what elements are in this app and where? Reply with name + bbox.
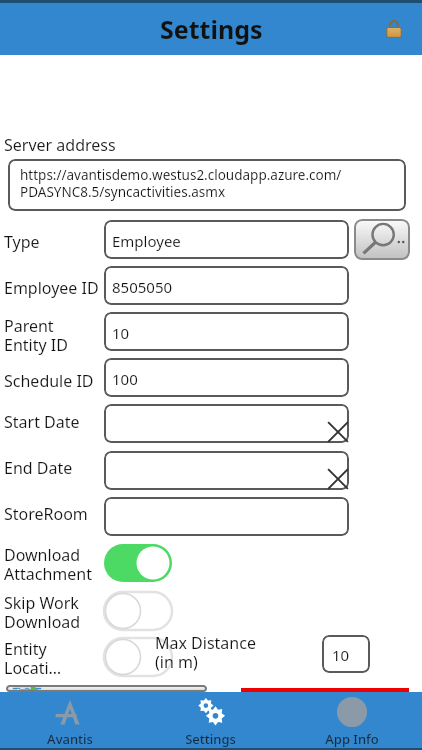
staticText: Employee xyxy=(112,231,181,251)
staticText: App Info xyxy=(325,730,379,748)
button[interactable] xyxy=(104,451,349,490)
staticText: Max Distance (in m) xyxy=(155,632,256,673)
staticText: Parent Entity ID xyxy=(4,315,68,356)
button[interactable]: Settings xyxy=(140,692,281,750)
staticText: Save and Download xyxy=(50,685,199,692)
button[interactable]: App Info xyxy=(281,692,422,750)
staticText: Type xyxy=(4,231,40,253)
button[interactable] xyxy=(104,497,349,536)
button[interactable] xyxy=(104,358,349,397)
button[interactable]: Entity Location toggle xyxy=(104,638,172,676)
button[interactable] xyxy=(322,635,370,673)
button[interactable] xyxy=(104,312,349,351)
staticText: Schedule ID xyxy=(4,370,94,392)
staticText: Employee ID xyxy=(4,277,99,299)
staticText: 100 xyxy=(112,369,138,389)
staticText: https://avantisdemo.westus2.cloudapp.azu… xyxy=(20,166,342,201)
button[interactable] xyxy=(8,159,406,211)
staticText: Server address xyxy=(4,134,116,156)
staticText: Settings xyxy=(160,12,263,46)
button[interactable]: Search type xyxy=(354,219,410,260)
button[interactable]: Avantis xyxy=(0,692,140,750)
button[interactable]: Lock xyxy=(380,15,408,43)
button[interactable]: Clear xyxy=(325,419,351,445)
staticText: 10 xyxy=(112,323,130,343)
button[interactable]: Skip Work Download toggle xyxy=(104,592,172,630)
button[interactable]: Save and Download xyxy=(6,685,207,692)
staticText: Avantis xyxy=(47,730,93,748)
staticText: 10 xyxy=(332,645,350,665)
button[interactable]: Clear xyxy=(325,466,351,492)
staticText: Download Attachment xyxy=(4,544,92,585)
button[interactable] xyxy=(104,404,349,443)
staticText: 8505050 xyxy=(112,277,173,297)
button[interactable] xyxy=(104,266,349,305)
staticText: End Date xyxy=(4,457,73,479)
staticText: StoreRoom xyxy=(4,503,88,525)
button[interactable] xyxy=(104,220,349,259)
staticText: Entity Locati… xyxy=(4,638,62,679)
button[interactable]: Download Attachment toggle xyxy=(104,544,172,582)
staticText: Settings xyxy=(185,730,236,748)
staticText: Skip Work Download xyxy=(4,592,81,633)
staticText: Start Date xyxy=(4,411,80,433)
